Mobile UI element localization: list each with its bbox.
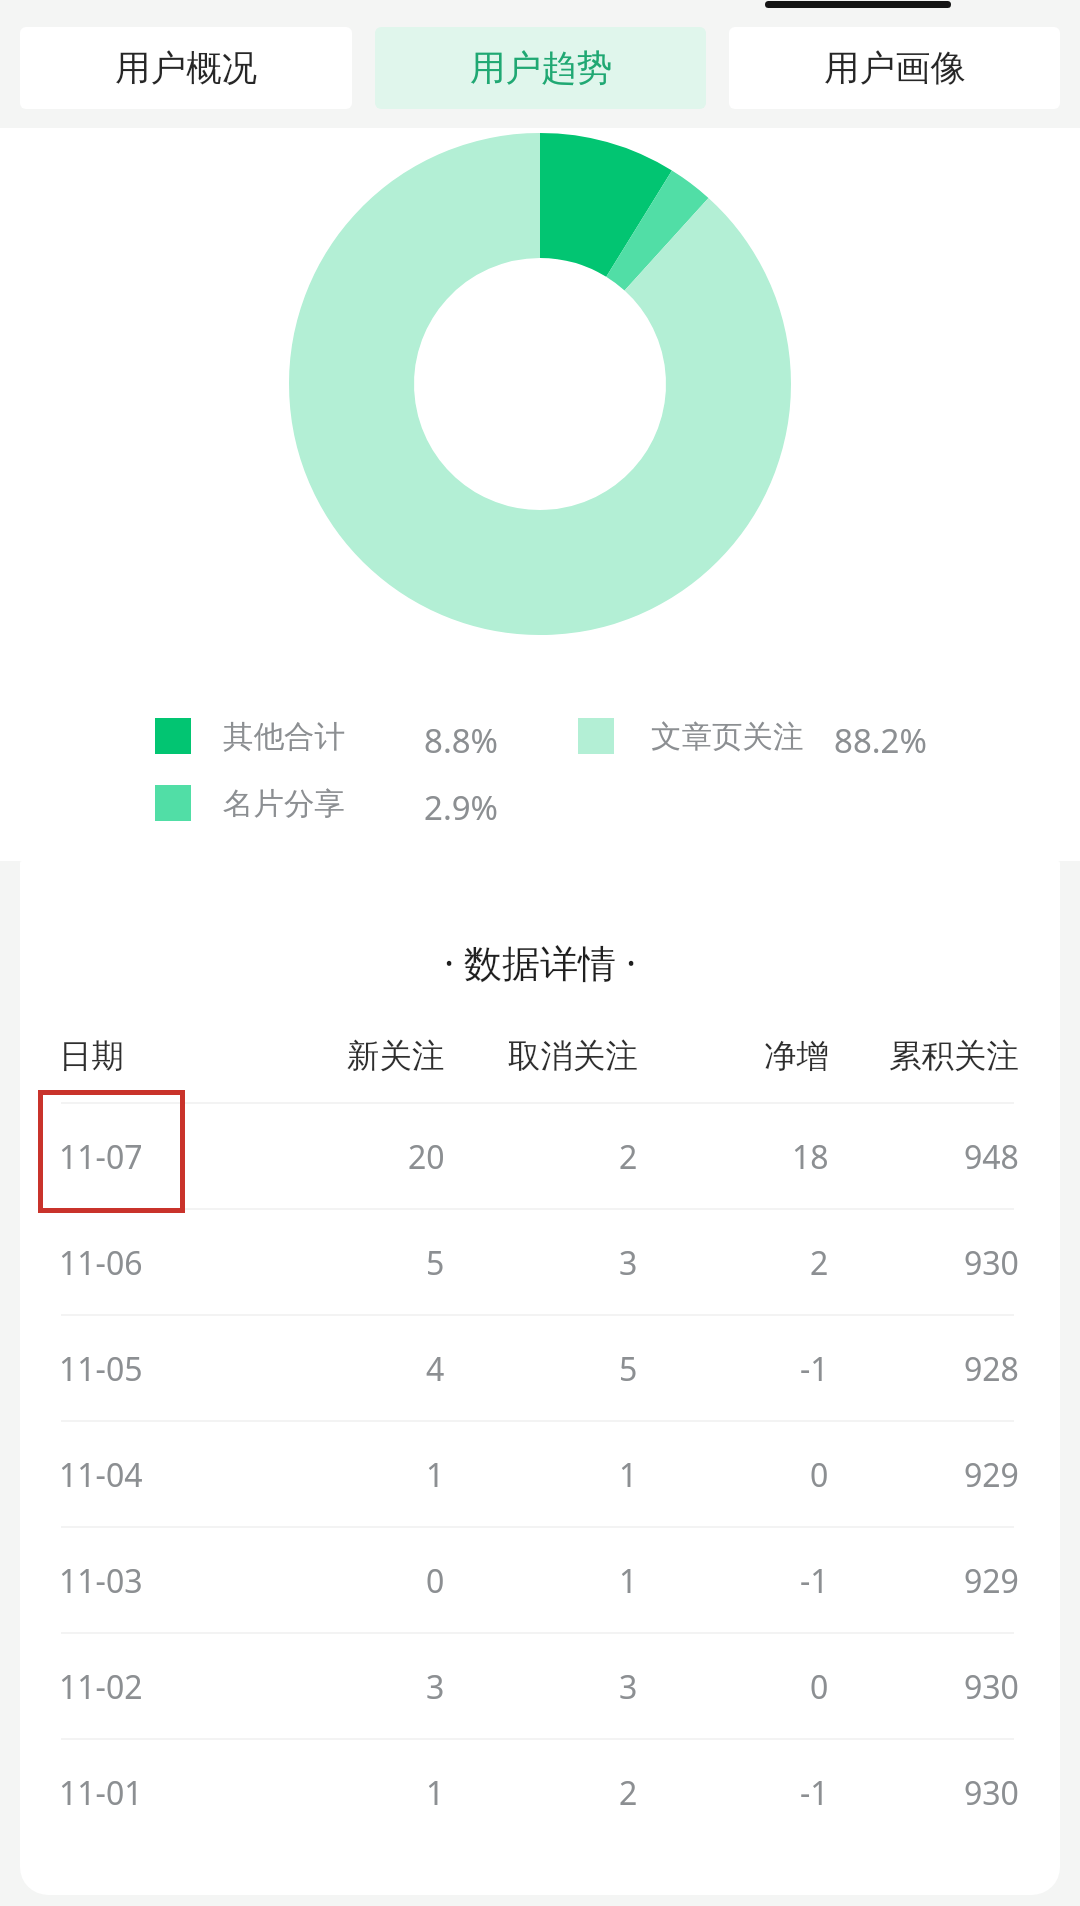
staticText: 用户画像: [824, 46, 966, 91]
button[interactable]: 日期: [20, 1008, 1060, 1104]
staticText: 929: [964, 1453, 1019, 1497]
staticText: -1: [800, 1347, 829, 1391]
staticText: 11-04: [59, 1453, 143, 1497]
staticText: 净增: [764, 1036, 829, 1077]
staticText: 4: [426, 1347, 445, 1391]
staticText: 用户概况: [115, 46, 257, 91]
staticText: 名片分享: [223, 785, 345, 823]
staticText: 2.9%: [424, 785, 499, 830]
button[interactable]: 11-04: [20, 1422, 1060, 1528]
staticText: 18: [792, 1135, 829, 1179]
staticText: 1: [426, 1771, 445, 1815]
staticText: 2: [619, 1135, 638, 1179]
staticText: 3: [619, 1241, 638, 1285]
staticText: 1: [619, 1559, 638, 1603]
staticText: 0: [810, 1665, 829, 1709]
staticText: · 数据详情 ·: [444, 936, 637, 988]
button[interactable]: 用户概况: [20, 27, 352, 109]
staticText: 11-06: [59, 1241, 143, 1285]
staticText: 5: [426, 1241, 445, 1285]
staticText: 0: [810, 1453, 829, 1497]
other: 关注来源占比环形图: [0, 128, 1080, 861]
staticText: 929: [964, 1559, 1019, 1603]
staticText: 0: [426, 1559, 445, 1603]
staticText: 88.2%: [834, 718, 927, 763]
staticText: 930: [964, 1241, 1019, 1285]
button[interactable]: 11-06: [20, 1210, 1060, 1316]
staticText: 2: [619, 1771, 638, 1815]
staticText: 11-05: [59, 1347, 143, 1391]
staticText: -1: [800, 1771, 829, 1815]
staticText: 新关注: [347, 1036, 445, 1077]
staticText: 930: [964, 1771, 1019, 1815]
button[interactable]: 11-03: [20, 1528, 1060, 1634]
staticText: 文章页关注: [651, 718, 804, 756]
staticText: 948: [964, 1135, 1019, 1179]
staticText: 1: [426, 1453, 445, 1497]
staticText: 20: [408, 1135, 445, 1179]
button[interactable]: 11-07: [20, 1104, 1060, 1210]
staticText: 其他合计: [223, 718, 345, 756]
staticText: 3: [619, 1665, 638, 1709]
staticText: -1: [800, 1559, 829, 1603]
button[interactable]: 11-02: [20, 1634, 1060, 1740]
staticText: 8.8%: [424, 718, 499, 763]
staticText: 11-02: [59, 1665, 143, 1709]
staticText: 累积关注: [889, 1036, 1019, 1077]
staticText: 日期: [59, 1036, 124, 1077]
staticText: 11-01: [59, 1771, 143, 1815]
button[interactable]: 用户趋势: [375, 27, 706, 109]
staticText: 用户趋势: [470, 46, 612, 91]
staticText: 1: [619, 1453, 638, 1497]
button[interactable]: 11-01: [20, 1740, 1060, 1846]
staticText: 取消关注: [508, 1036, 638, 1077]
staticText: 928: [964, 1347, 1019, 1391]
button[interactable]: 用户画像: [729, 27, 1060, 109]
staticText: 5: [619, 1347, 638, 1391]
staticText: 2: [810, 1241, 829, 1285]
staticText: 11-07: [59, 1135, 143, 1179]
button[interactable]: 11-05: [20, 1316, 1060, 1422]
staticText: 930: [964, 1665, 1019, 1709]
staticText: 11-03: [59, 1559, 143, 1603]
staticText: 3: [426, 1665, 445, 1709]
